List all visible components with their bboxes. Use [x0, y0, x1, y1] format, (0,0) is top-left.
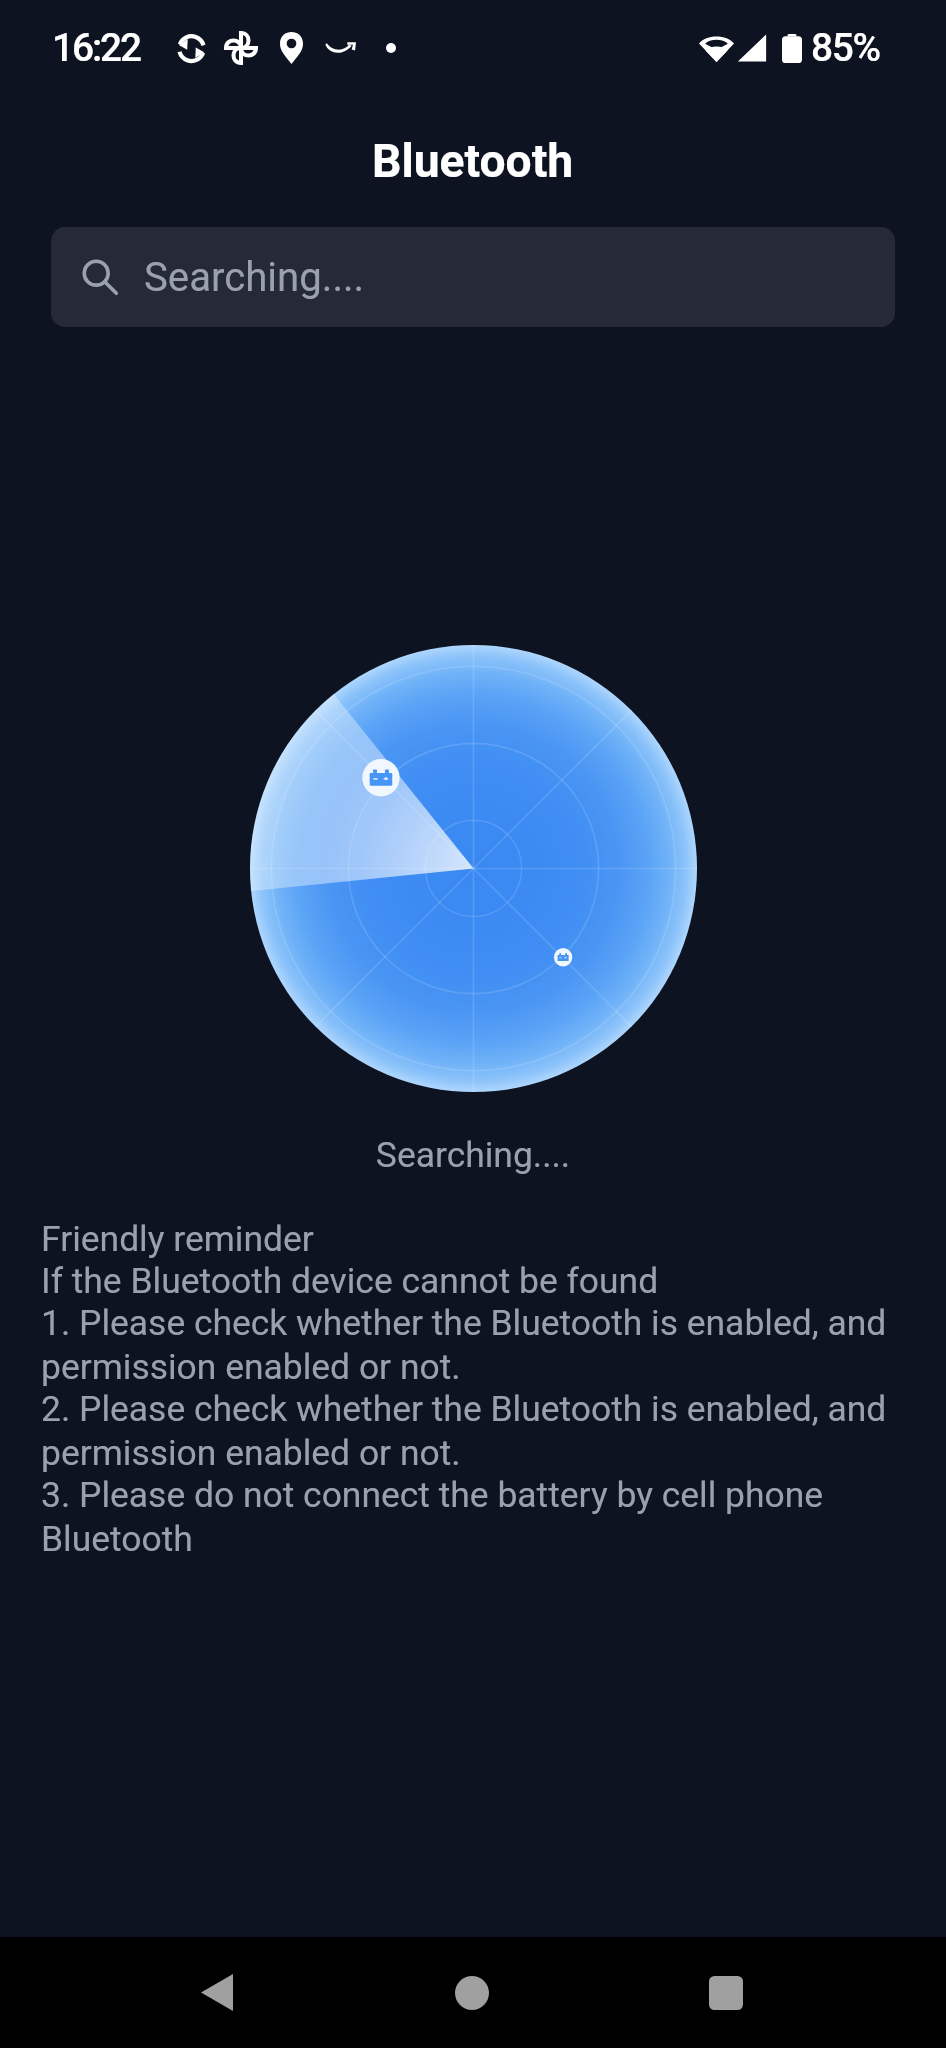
staticText: Friendly reminder — [41, 1218, 314, 1260]
staticText: 85% — [811, 25, 880, 71]
staticText: 2. Please check whether the Bluetooth is… — [41, 1388, 896, 1474]
staticText: 3. Please do not connect the battery by … — [41, 1474, 896, 1560]
staticText: Bluetooth — [372, 134, 574, 188]
staticText: Searching.... — [144, 254, 365, 301]
button[interactable]: Back — [164, 1940, 269, 2045]
staticText: If the Bluetooth device cannot be found — [41, 1260, 659, 1302]
button[interactable]: Home — [419, 1940, 524, 2045]
button[interactable]: Searching.... — [51, 227, 895, 327]
staticText: 16:22 — [52, 25, 140, 71]
button[interactable]: Recents — [673, 1940, 778, 2045]
staticText: 1. Please check whether the Bluetooth is… — [41, 1302, 896, 1388]
staticText: Searching.... — [0, 1134, 946, 1176]
